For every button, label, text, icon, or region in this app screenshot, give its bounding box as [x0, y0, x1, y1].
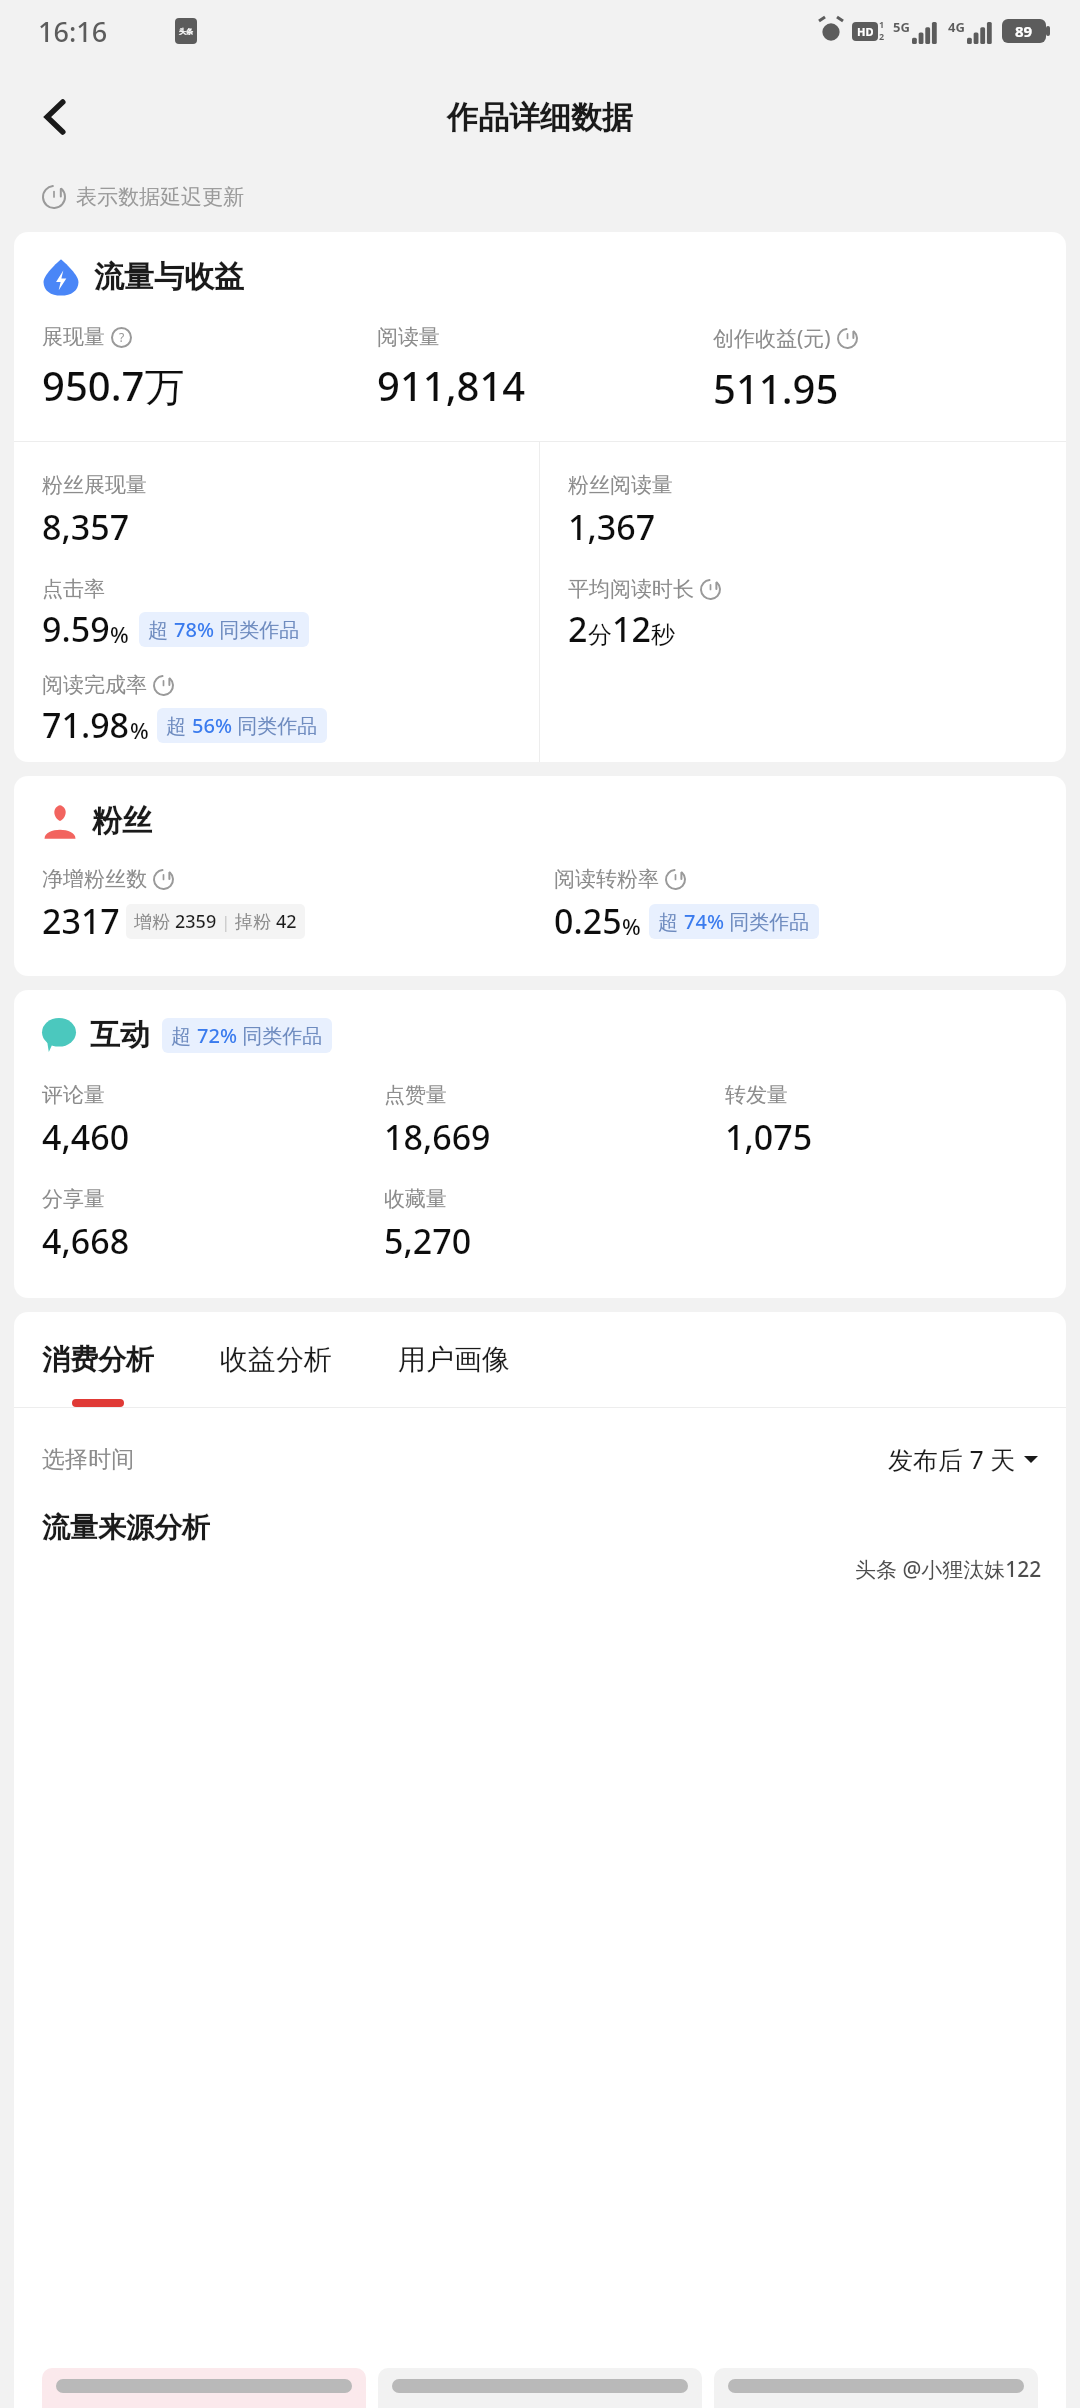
staticText: 5,270 — [384, 1218, 472, 1264]
staticText: 1 — [879, 18, 885, 30]
staticText: 粉丝 — [92, 802, 152, 840]
staticText: 78% — [174, 616, 214, 643]
staticText: 粉丝阅读量 — [568, 472, 673, 498]
staticText: 展现量 — [42, 324, 105, 350]
staticText: HD — [857, 24, 874, 39]
staticText: 超 — [166, 712, 192, 739]
staticText: 互动 — [90, 1016, 150, 1054]
staticText: 作品详细数据 — [447, 98, 633, 137]
staticText: 分享量 — [42, 1186, 105, 1212]
staticText: 增粉 — [134, 909, 175, 934]
staticText: 12 — [612, 606, 651, 652]
staticText: 8,357 — [42, 504, 130, 550]
staticText: 71.98 — [42, 702, 130, 748]
button[interactable]: 消费分析 — [42, 1342, 154, 1407]
staticText: 流量与收益 — [94, 258, 244, 296]
staticText: % — [622, 911, 641, 941]
staticText: 4,460 — [42, 1114, 130, 1160]
staticText: 点赞量 — [384, 1082, 447, 1108]
staticText: 评论量 — [42, 1082, 105, 1108]
staticText: 发布后 7 天 — [888, 1442, 1016, 1476]
staticText: 创作收益(元) — [713, 324, 831, 353]
staticText: 511.95 — [713, 361, 839, 415]
staticText: 2 — [879, 30, 885, 42]
staticText: 消费分析 — [42, 1342, 154, 1377]
staticText: % — [110, 619, 129, 649]
staticText: 掉粉 — [235, 909, 276, 934]
staticText: 平均阅读时长 — [568, 576, 694, 602]
staticText: 18,669 — [384, 1114, 491, 1160]
staticText: 2317 — [42, 898, 120, 944]
staticText: 89 — [1015, 21, 1033, 41]
staticText: 粉丝展现量 — [42, 472, 147, 498]
staticText: 4,668 — [42, 1218, 130, 1264]
staticText: 超 — [658, 908, 684, 935]
staticText: 秒 — [651, 620, 675, 650]
staticText: 74% — [684, 908, 724, 935]
staticText: 同类作品 — [237, 1022, 323, 1049]
staticText: 同类作品 — [724, 908, 810, 935]
button[interactable]: 用户画像 — [398, 1342, 510, 1407]
button[interactable]: 收益分析 — [220, 1342, 332, 1407]
staticText: 阅读量 — [377, 324, 440, 350]
staticText: % — [130, 715, 149, 745]
staticText: 同类作品 — [214, 616, 300, 643]
staticText: 1,367 — [568, 504, 656, 550]
staticText: 转发量 — [725, 1082, 788, 1108]
staticText: 分 — [588, 620, 612, 650]
staticText: 72% — [197, 1022, 237, 1049]
staticText: 2 — [568, 606, 588, 652]
staticText: 用户画像 — [398, 1342, 510, 1377]
staticText: 阅读转粉率 — [554, 866, 659, 892]
staticText: 点击率 — [42, 576, 105, 602]
staticText: 头条 @小狸汰妹122 — [855, 1555, 1042, 1584]
staticText: 4G — [948, 18, 965, 36]
staticText: 超 — [148, 616, 174, 643]
staticText: ? — [119, 329, 125, 346]
staticText: 1,075 — [725, 1114, 813, 1160]
staticText: 阅读完成率 — [42, 672, 147, 698]
staticText: 0.25 — [554, 898, 622, 944]
button[interactable]: Back — [20, 81, 92, 153]
staticText: 选择时间 — [42, 1445, 134, 1474]
staticText: 头条 — [179, 27, 193, 36]
staticText: 同类作品 — [232, 712, 318, 739]
staticText: | — [217, 911, 235, 933]
button[interactable]: 发布后 7 天 — [888, 1442, 1038, 1476]
staticText: 16:16 — [38, 13, 108, 50]
staticText: 5G — [893, 18, 910, 36]
staticText: 净增粉丝数 — [42, 866, 147, 892]
staticText: 911,814 — [377, 358, 526, 412]
staticText: 流量来源分析 — [42, 1510, 210, 1545]
staticText: 950.7万 — [42, 358, 185, 413]
staticText: 收藏量 — [384, 1186, 447, 1212]
staticText: 表示数据延迟更新 — [76, 184, 244, 210]
staticText: 收益分析 — [220, 1342, 332, 1377]
staticText: 2359 — [175, 909, 217, 934]
staticText: 42 — [276, 909, 297, 934]
staticText: 超 — [171, 1022, 197, 1049]
staticText: 56% — [192, 712, 232, 739]
staticText: 9.59 — [42, 606, 110, 652]
